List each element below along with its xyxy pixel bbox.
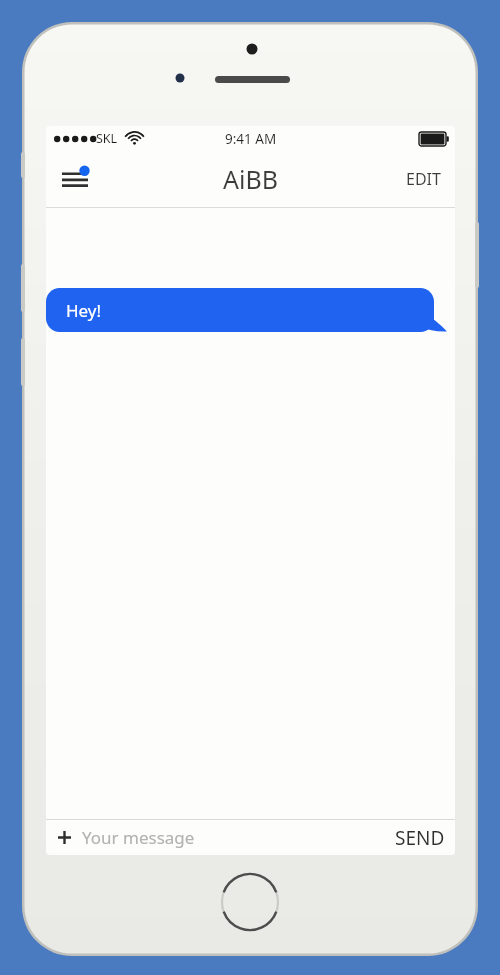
staticText: Your message [82, 826, 195, 849]
staticText: SEND [395, 825, 445, 849]
staticText: Hey! [66, 299, 102, 322]
button[interactable]: Hey! [46, 288, 447, 332]
staticText: AiBB [223, 162, 278, 196]
button[interactable]: Menu [54, 158, 96, 200]
button[interactable]: Your message [82, 826, 385, 849]
button[interactable]: Add attachment [46, 819, 82, 855]
staticText: 9:41 AM [225, 130, 277, 148]
staticText: EDIT [406, 168, 441, 190]
button[interactable]: SEND [385, 819, 455, 855]
staticText: SKL [96, 130, 118, 147]
button[interactable]: EDIT [402, 162, 445, 196]
